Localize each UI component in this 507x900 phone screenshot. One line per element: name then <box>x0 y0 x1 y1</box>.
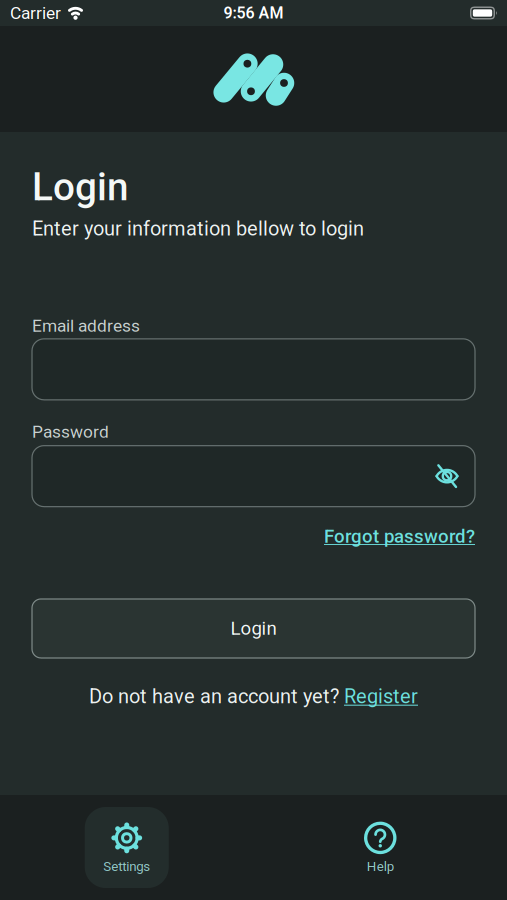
staticText: Password <box>32 422 109 442</box>
staticText: Do not have an account yet? <box>89 685 344 708</box>
staticText: Enter your information bellow to login <box>32 217 364 240</box>
staticText: Login <box>32 165 129 209</box>
button[interactable]: Show password <box>433 462 461 490</box>
staticText: Forgot password? <box>324 526 475 547</box>
button[interactable]: Login <box>32 599 475 658</box>
staticText: Carrier <box>10 3 61 23</box>
staticText: Email address <box>32 316 140 336</box>
staticText: Help <box>367 859 394 874</box>
staticText: 9:56 AM <box>223 4 283 22</box>
button[interactable]: Settings <box>85 807 169 888</box>
staticText: Settings <box>103 859 150 874</box>
button[interactable]: Help <box>338 807 422 888</box>
staticText: Login <box>230 618 276 639</box>
staticText: Register <box>344 685 418 708</box>
button[interactable]: Register <box>344 685 418 708</box>
button[interactable]: Forgot password? <box>324 526 475 547</box>
